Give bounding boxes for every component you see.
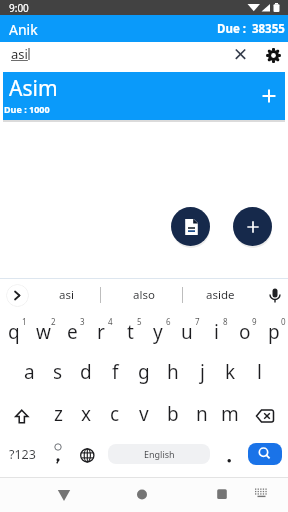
staticText: 7: [195, 316, 200, 327]
button[interactable]: [231, 45, 250, 64]
button[interactable]: y: [144, 318, 172, 346]
staticText: 6: [166, 316, 171, 327]
button[interactable]: c: [101, 400, 129, 428]
staticText: ?123: [9, 446, 36, 463]
button[interactable]: [171, 207, 210, 246]
button[interactable]: [266, 286, 284, 305]
button[interactable]: u: [173, 318, 201, 346]
staticText: Asim: [9, 74, 58, 103]
staticText: i: [214, 319, 219, 345]
button[interactable]: [6, 284, 29, 307]
staticText: asi: [59, 287, 74, 303]
staticText: x: [81, 401, 92, 427]
button[interactable]: t: [116, 318, 144, 346]
button[interactable]: aside: [190, 285, 250, 305]
staticText: f: [112, 359, 119, 385]
button[interactable]: n: [188, 400, 216, 428]
button[interactable]: x: [72, 400, 100, 428]
staticText: q: [8, 319, 20, 345]
button[interactable]: [248, 443, 282, 465]
staticText: 1: [22, 316, 27, 327]
staticText: y: [153, 319, 163, 345]
staticText: 3: [80, 316, 85, 327]
staticText: v: [139, 401, 149, 427]
staticText: Anik: [9, 20, 38, 39]
staticText: 5: [137, 316, 142, 327]
staticText: n: [196, 401, 208, 427]
button[interactable]: [11, 406, 33, 428]
button[interactable]: English: [108, 444, 210, 464]
staticText: o: [239, 319, 251, 345]
staticText: r: [97, 319, 105, 345]
button[interactable]: [254, 408, 278, 424]
staticText: t: [127, 319, 134, 345]
button[interactable]: i: [202, 318, 230, 346]
staticText: g: [138, 359, 150, 385]
button[interactable]: q: [0, 318, 28, 346]
button[interactable]: p: [260, 318, 288, 346]
button[interactable]: [3, 72, 285, 120]
button[interactable]: [80, 448, 96, 464]
staticText: a: [24, 359, 35, 385]
button[interactable]: f: [101, 358, 129, 386]
button[interactable]: a: [15, 358, 43, 386]
button[interactable]: [48, 440, 68, 466]
staticText: 9: [252, 316, 257, 327]
button[interactable]: d: [72, 358, 100, 386]
staticText: aside: [206, 287, 235, 303]
staticText: Due : 1000: [4, 103, 50, 115]
button[interactable]: l: [245, 358, 273, 386]
button[interactable]: r: [87, 318, 115, 346]
staticText: s: [53, 359, 63, 385]
button[interactable]: [52, 484, 76, 506]
button[interactable]: k: [216, 358, 244, 386]
button[interactable]: [210, 484, 234, 506]
staticText: u: [181, 319, 193, 345]
staticText: 9:00: [9, 1, 29, 15]
staticText: m: [221, 401, 239, 427]
staticText: Due : 38355: [217, 21, 285, 37]
button[interactable]: [222, 452, 238, 468]
button[interactable]: o: [231, 318, 259, 346]
staticText: 0: [281, 316, 286, 327]
button[interactable]: asi: [38, 285, 94, 305]
staticText: w: [36, 319, 51, 345]
staticText: asi: [11, 45, 28, 63]
staticText: 2: [51, 316, 56, 327]
staticText: e: [67, 319, 78, 345]
button[interactable]: j: [188, 358, 216, 386]
button[interactable]: also: [114, 285, 174, 305]
staticText: c: [110, 401, 120, 427]
button[interactable]: m: [216, 400, 244, 428]
staticText: also: [133, 287, 155, 303]
staticText: h: [167, 359, 179, 385]
button[interactable]: v: [130, 400, 158, 428]
button[interactable]: [130, 484, 154, 506]
button[interactable]: [264, 46, 283, 65]
staticText: b: [167, 401, 179, 427]
button[interactable]: h: [159, 358, 187, 386]
staticText: l: [257, 359, 262, 385]
staticText: k: [225, 359, 236, 385]
button[interactable]: z: [44, 400, 72, 428]
button[interactable]: ?123: [2, 444, 42, 464]
button[interactable]: [250, 485, 272, 505]
staticText: z: [54, 401, 63, 427]
button[interactable]: s: [44, 358, 72, 386]
staticText: 4: [108, 316, 113, 327]
button[interactable]: [233, 207, 272, 246]
staticText: p: [268, 319, 280, 345]
staticText: 8: [223, 316, 228, 327]
staticText: j: [200, 359, 205, 385]
button[interactable]: [0, 15, 288, 42]
staticText: d: [80, 359, 92, 385]
button[interactable]: g: [130, 358, 158, 386]
button[interactable]: e: [58, 318, 86, 346]
button[interactable]: w: [29, 318, 57, 346]
button[interactable]: b: [159, 400, 187, 428]
staticText: English: [144, 448, 175, 460]
